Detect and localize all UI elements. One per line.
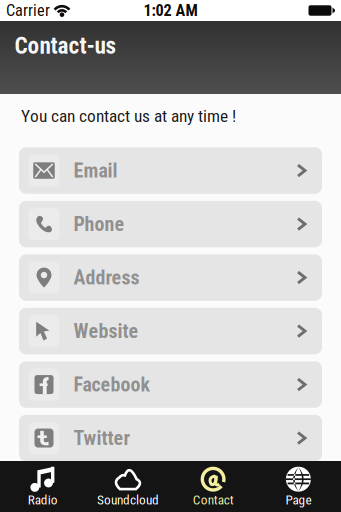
button[interactable]: Facebook: [19, 361, 322, 408]
staticText: Facebook: [73, 373, 150, 396]
staticText: 1:02 AM: [143, 1, 197, 20]
staticText: Contact-us: [14, 32, 116, 59]
staticText: Phone: [73, 212, 124, 236]
button[interactable]: Radio: [0, 458, 85, 512]
button[interactable]: Twitter: [19, 415, 322, 461]
button[interactable]: Website: [19, 308, 322, 354]
staticText: Address: [73, 266, 139, 289]
staticText: Twitter: [73, 426, 130, 450]
button[interactable]: Soundcloud: [85, 458, 170, 512]
staticText: Website: [73, 319, 138, 343]
staticText: Contact: [193, 492, 234, 508]
staticText: Radio: [28, 492, 58, 508]
staticText: Page: [285, 492, 311, 508]
button[interactable]: Address: [19, 254, 322, 301]
staticText: Soundcloud: [97, 492, 159, 508]
button[interactable]: Contact: [170, 458, 256, 512]
staticText: You can contact us at any time !: [21, 106, 236, 126]
button[interactable]: Phone: [19, 201, 322, 247]
staticText: Carrier: [6, 1, 50, 20]
staticText: Email: [73, 159, 117, 182]
button[interactable]: Page: [256, 458, 341, 512]
button[interactable]: Email: [19, 147, 322, 194]
